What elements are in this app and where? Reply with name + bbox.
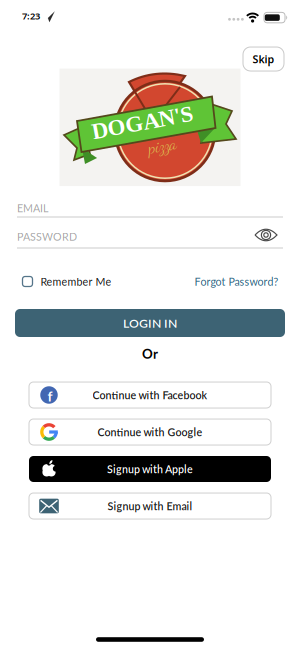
- staticText: EMAIL: [17, 202, 48, 214]
- staticText: Forgot Password?: [194, 275, 278, 288]
- button[interactable]: LOGIN IN: [15, 309, 285, 337]
- staticText: 7:23: [22, 10, 40, 22]
- staticText: pizza: [148, 135, 177, 156]
- button[interactable]: Remember Me: [22, 275, 111, 288]
- staticText: Signup with Apple: [107, 463, 193, 475]
- staticText: Continue with Facebook: [92, 389, 207, 401]
- button[interactable]: Forgot Password?: [194, 275, 278, 288]
- button[interactable]: Skip: [243, 47, 284, 71]
- staticText: PASSWORD: [17, 230, 77, 243]
- staticText: Skip: [252, 52, 274, 66]
- staticText: Or: [142, 345, 158, 361]
- button[interactable]: Signup with Email: [29, 493, 271, 519]
- staticText: Signup with Email: [107, 500, 192, 512]
- staticText: f: [47, 388, 52, 405]
- staticText: Remember Me: [40, 275, 111, 288]
- staticText: LOGIN IN: [123, 316, 177, 330]
- staticText: DOGAN'S: [91, 110, 194, 135]
- button[interactable]: Signup with Apple: [29, 456, 271, 482]
- button[interactable]: f: [29, 382, 271, 408]
- staticText: Continue with Google: [97, 426, 202, 438]
- button[interactable]: Show password: [253, 226, 279, 244]
- button[interactable]: Continue with Google: [29, 419, 271, 445]
